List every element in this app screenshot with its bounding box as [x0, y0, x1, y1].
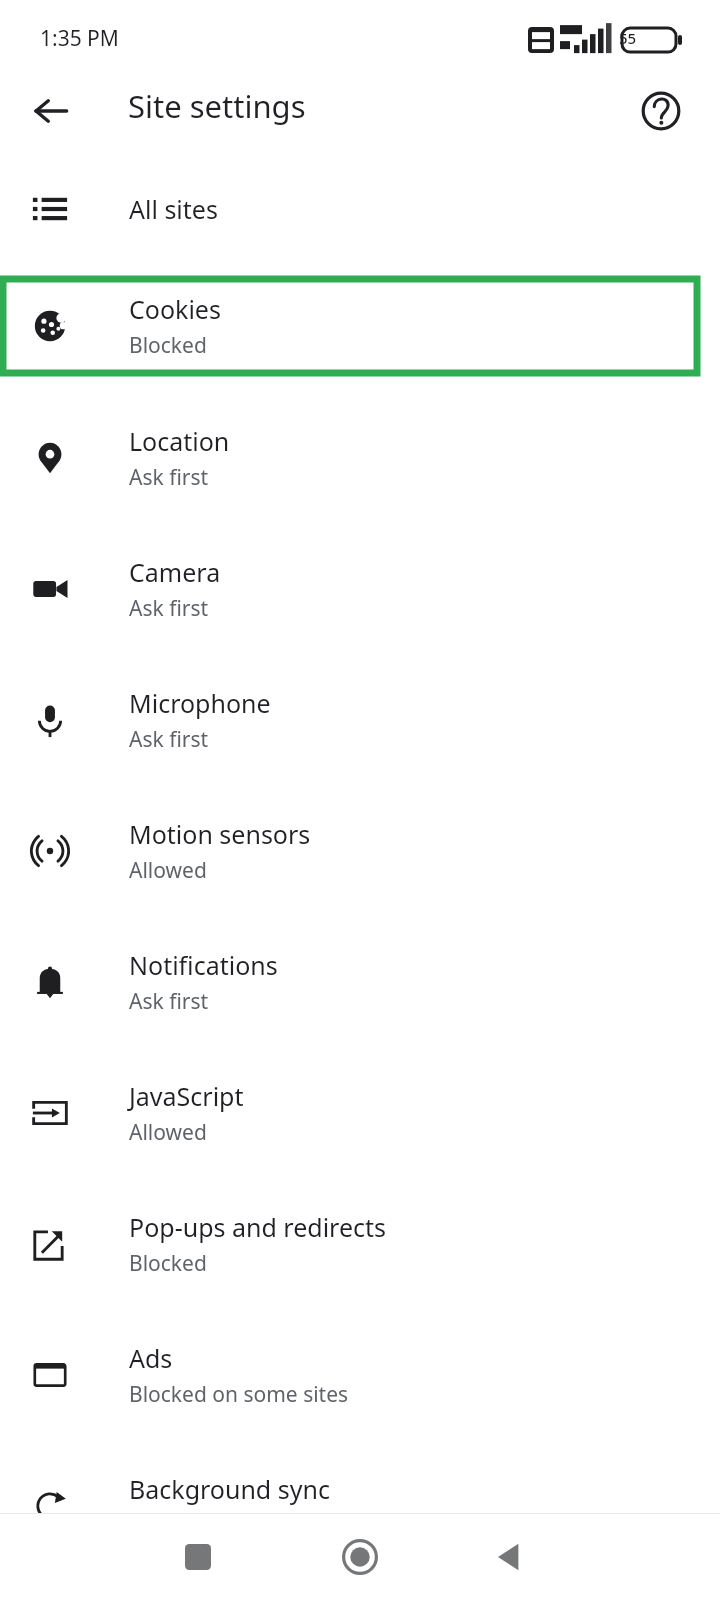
staticText: Allowed	[129, 856, 207, 885]
staticText: Blocked	[129, 331, 207, 360]
staticText: Ask first	[129, 725, 209, 754]
staticText: 1:35 PM	[40, 24, 119, 53]
staticText: Background sync	[129, 1472, 330, 1506]
staticText: Allowed	[129, 1118, 207, 1147]
button[interactable]: Background sync	[0, 1440, 720, 1571]
staticText: Cookies	[129, 292, 221, 326]
staticText: Camera	[129, 555, 221, 589]
button[interactable]: Ads	[0, 1309, 720, 1440]
staticText: 55	[619, 28, 637, 48]
button[interactable]: Recent apps	[163, 1514, 233, 1600]
button[interactable]: Help	[628, 78, 694, 144]
button[interactable]: Home	[325, 1514, 395, 1600]
staticText: JavaScript	[129, 1079, 244, 1113]
staticText: Allowed	[129, 1511, 207, 1540]
staticText: Pop-ups and redirects	[129, 1210, 387, 1244]
button[interactable]: Location	[0, 392, 720, 523]
staticText: Ask first	[129, 594, 209, 623]
button[interactable]: Back	[18, 78, 84, 144]
button[interactable]: Pop-ups and redirects	[0, 1178, 720, 1309]
button[interactable]: Motion sensors	[0, 785, 720, 916]
staticText: Ads	[129, 1341, 173, 1375]
button[interactable]: Camera	[0, 523, 720, 654]
staticText: Blocked on some sites	[129, 1380, 349, 1409]
staticText: Location	[129, 424, 230, 458]
staticText: Motion sensors	[129, 817, 311, 851]
staticText: Site settings	[128, 85, 306, 127]
button[interactable]: Cookies	[0, 276, 720, 376]
staticText: Microphone	[129, 686, 271, 720]
staticText: Ask first	[129, 463, 209, 492]
staticText: Ask first	[129, 987, 209, 1016]
button[interactable]: All sites	[0, 166, 720, 252]
staticText: All sites	[129, 192, 218, 226]
staticText: Blocked	[129, 1249, 207, 1278]
button[interactable]: JavaScript	[0, 1047, 720, 1178]
button[interactable]: Microphone	[0, 654, 720, 785]
staticText: Notifications	[129, 948, 278, 982]
button[interactable]: Back	[475, 1514, 545, 1600]
button[interactable]: Notifications	[0, 916, 720, 1047]
